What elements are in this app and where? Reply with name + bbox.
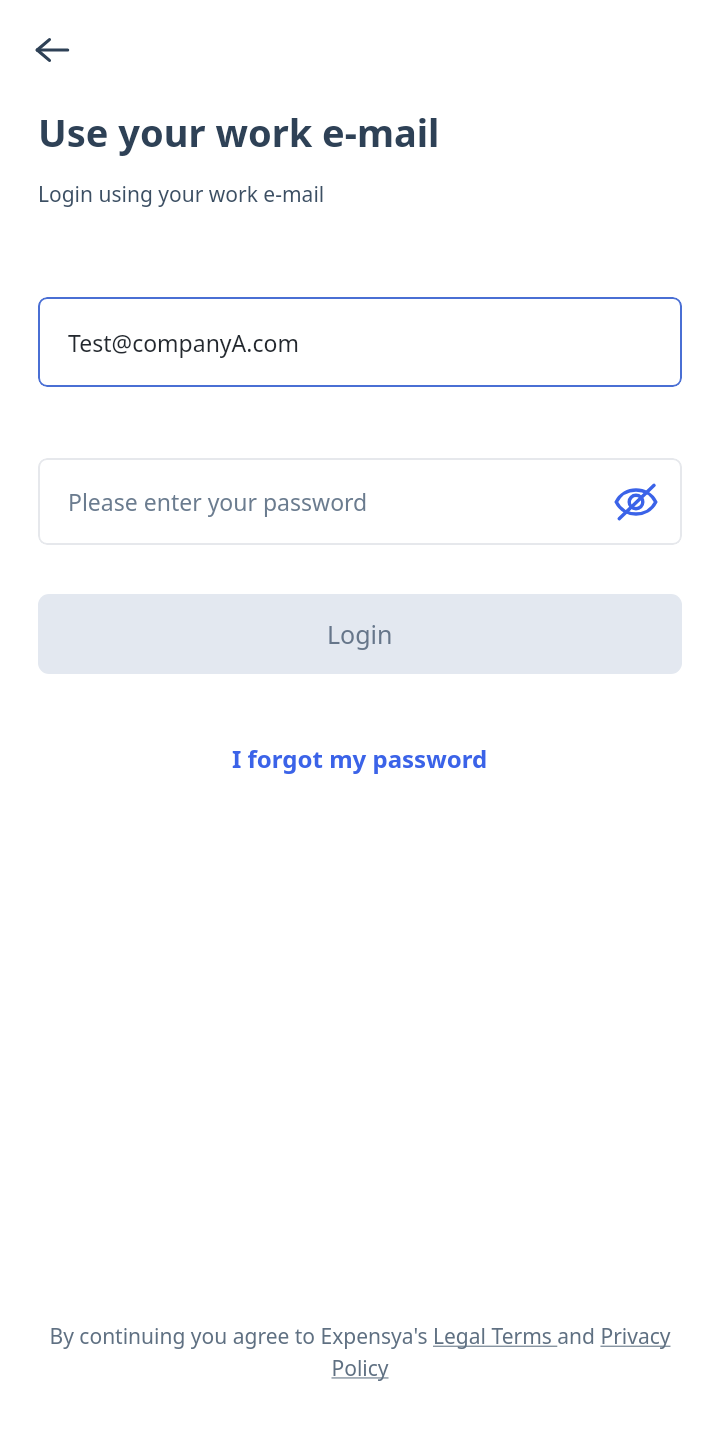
button[interactable]: Back — [20, 18, 84, 82]
staticText: Please enter your password — [68, 486, 608, 517]
button[interactable]: Login — [38, 594, 682, 674]
button[interactable]: Please enter your password — [38, 458, 682, 545]
staticText: Login using your work e-mail — [38, 180, 325, 209]
staticText: I forgot my password — [232, 742, 488, 775]
staticText: By continuing you agree to Expensya's Le… — [34, 1322, 686, 1382]
staticText: Test@companyA.com — [68, 327, 299, 358]
button[interactable]: I forgot my password — [218, 736, 502, 781]
button[interactable]: By continuing you agree to Expensya's Le… — [34, 1322, 686, 1382]
staticText: Use your work e-mail — [38, 106, 440, 158]
button[interactable]: Show password — [608, 474, 664, 530]
button[interactable]: Test@companyA.com — [38, 297, 682, 387]
staticText: Login — [327, 617, 393, 651]
